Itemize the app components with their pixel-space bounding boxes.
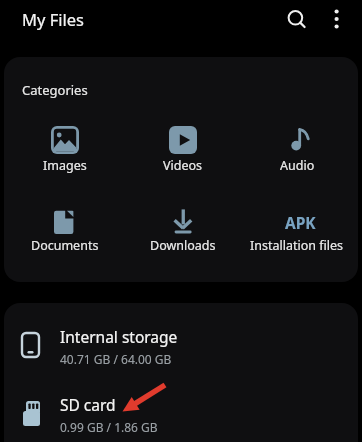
staticText: 0.99 GB / 1.86 GB: [60, 419, 158, 435]
button[interactable]: Images: [6, 120, 124, 186]
staticText: Videos: [163, 157, 203, 174]
staticText: Images: [43, 157, 87, 174]
button[interactable]: Audio: [238, 120, 356, 186]
button[interactable]: [323, 3, 353, 35]
staticText: My Files: [22, 8, 84, 30]
button[interactable]: APK: [238, 202, 356, 268]
staticText: Downloads: [150, 237, 216, 254]
button[interactable]: Documents: [6, 202, 124, 268]
staticText: Documents: [31, 237, 99, 254]
button[interactable]: Videos: [124, 120, 242, 186]
button[interactable]: [280, 3, 312, 35]
staticText: Audio: [280, 157, 315, 174]
staticText: 40.71 GB / 64.00 GB: [60, 351, 172, 367]
staticText: Installation files: [250, 237, 344, 254]
button[interactable]: SD card: [4, 381, 358, 442]
staticText: Categories: [22, 81, 88, 99]
staticText: SD card: [60, 394, 116, 415]
button[interactable]: Downloads: [124, 202, 242, 268]
button[interactable]: Internal storage: [4, 313, 358, 377]
staticText: Internal storage: [60, 326, 178, 347]
staticText: APK: [285, 212, 316, 233]
